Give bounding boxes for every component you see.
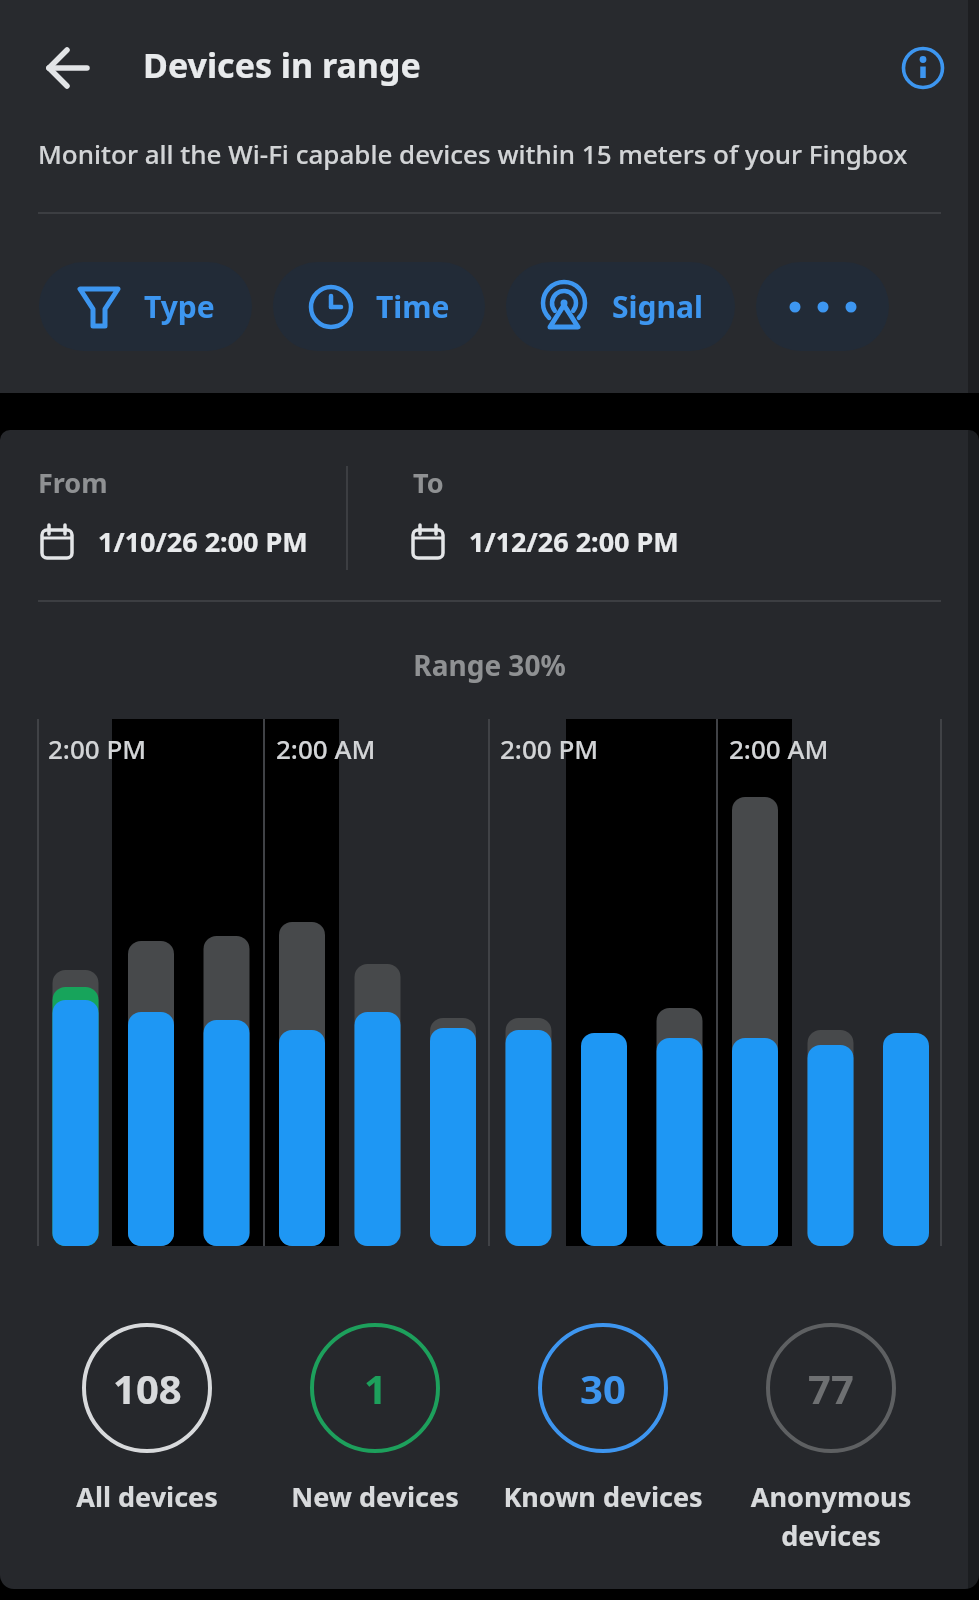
button[interactable] <box>36 36 100 100</box>
button[interactable]: Signal <box>506 262 735 351</box>
button[interactable]: 1 <box>261 1323 489 1515</box>
button[interactable]: 1/12/26 2:00 PM <box>411 523 679 560</box>
staticText: Range 30% <box>0 646 979 684</box>
staticText: 30 <box>580 1361 626 1415</box>
button[interactable] <box>893 38 953 98</box>
staticText: 1/12/26 2:00 PM <box>469 523 679 560</box>
staticText: Time <box>376 286 450 327</box>
staticText: 77 <box>808 1361 854 1415</box>
staticText: 108 <box>113 1361 182 1415</box>
staticText: Devices in range <box>143 42 421 88</box>
staticText: 2:00 AM <box>276 731 376 766</box>
staticText: 2:00 AM <box>729 731 829 766</box>
staticText: 1 <box>364 1361 387 1415</box>
staticText: From <box>38 464 108 501</box>
button[interactable]: Time <box>273 262 485 351</box>
button[interactable]: 108 <box>33 1323 261 1515</box>
staticText: Anonymous devices <box>717 1478 945 1554</box>
staticText: To <box>413 464 444 501</box>
button[interactable] <box>756 262 889 351</box>
staticText: Type <box>144 286 215 327</box>
staticText: All devices <box>76 1478 218 1515</box>
button[interactable]: 30 <box>489 1323 717 1515</box>
button[interactable]: Type <box>39 262 252 351</box>
staticText: Monitor all the Wi-Fi capable devices wi… <box>38 136 908 171</box>
staticText: 2:00 PM <box>500 731 599 766</box>
button[interactable]: 1/10/26 2:00 PM <box>40 523 308 560</box>
staticText: New devices <box>291 1478 459 1515</box>
staticText: 1/10/26 2:00 PM <box>98 523 308 560</box>
button[interactable]: 77 <box>717 1323 945 1554</box>
staticText: Signal <box>612 286 703 327</box>
staticText: Known devices <box>503 1478 703 1515</box>
staticText: 2:00 PM <box>48 731 147 766</box>
